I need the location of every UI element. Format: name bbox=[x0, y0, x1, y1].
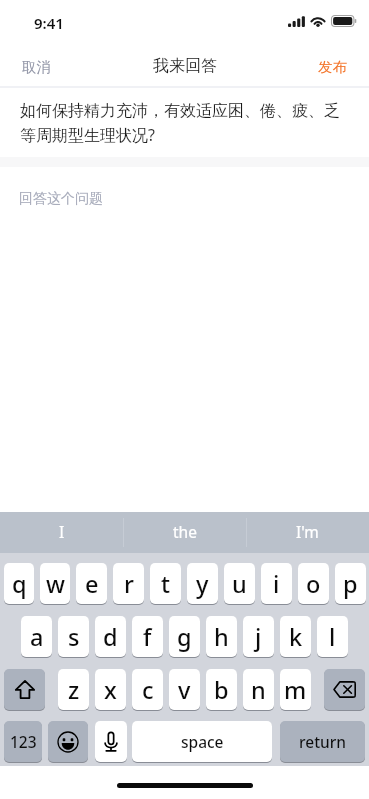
button[interactable]: e bbox=[76, 563, 107, 604]
staticText: m bbox=[284, 674, 307, 706]
button[interactable]: I'm bbox=[246, 512, 369, 553]
staticText: e bbox=[85, 568, 99, 600]
button[interactable]: 取消 bbox=[6, 46, 67, 88]
button[interactable]: Emoji bbox=[48, 721, 88, 762]
button[interactable]: b bbox=[206, 669, 237, 710]
staticText: the bbox=[173, 521, 197, 542]
button[interactable]: y bbox=[187, 563, 218, 604]
staticText: g bbox=[177, 621, 192, 653]
button[interactable]: m bbox=[280, 669, 311, 710]
staticText: i bbox=[273, 568, 280, 600]
button[interactable]: return bbox=[280, 721, 365, 762]
staticText: I'm bbox=[296, 521, 319, 542]
staticText: 我来回答 bbox=[153, 56, 217, 76]
button[interactable]: d bbox=[95, 616, 126, 657]
button[interactable]: 123 bbox=[4, 721, 42, 762]
staticText: return bbox=[299, 731, 347, 752]
staticText: q bbox=[12, 568, 27, 600]
button[interactable]: a bbox=[21, 616, 52, 657]
button[interactable]: g bbox=[169, 616, 200, 657]
staticText: p bbox=[343, 568, 358, 600]
staticText: w bbox=[46, 568, 65, 600]
button[interactable]: I bbox=[0, 512, 123, 553]
button[interactable]: x bbox=[95, 669, 126, 710]
button[interactable]: r bbox=[113, 563, 144, 604]
button[interactable]: h bbox=[206, 616, 237, 657]
staticText: 等周期型生理状况? bbox=[20, 124, 155, 146]
staticText: z bbox=[68, 674, 80, 706]
staticText: 回答这个问题 bbox=[19, 190, 103, 208]
button[interactable]: n bbox=[243, 669, 274, 710]
button[interactable]: q bbox=[4, 563, 34, 604]
staticText: c bbox=[142, 674, 154, 706]
button[interactable]: w bbox=[40, 563, 70, 604]
staticText: b bbox=[214, 674, 229, 706]
staticText: I bbox=[59, 521, 65, 542]
button[interactable]: l bbox=[317, 616, 348, 657]
staticText: 如何保持精力充沛，有效适应困、倦、疲、乏 bbox=[20, 101, 340, 121]
staticText: n bbox=[251, 674, 266, 706]
button[interactable]: o bbox=[298, 563, 329, 604]
button[interactable]: k bbox=[280, 616, 311, 657]
button[interactable]: i bbox=[261, 563, 292, 604]
staticText: v bbox=[178, 674, 191, 706]
staticText: x bbox=[104, 674, 117, 706]
button[interactable]: f bbox=[132, 616, 163, 657]
button[interactable]: the bbox=[123, 512, 246, 553]
staticText: l bbox=[329, 621, 336, 653]
button[interactable]: j bbox=[243, 616, 274, 657]
button[interactable]: 发布 bbox=[302, 46, 363, 88]
staticText: 123 bbox=[10, 731, 37, 752]
staticText: r bbox=[124, 568, 134, 600]
button[interactable]: space bbox=[132, 721, 272, 762]
staticText: t bbox=[161, 568, 171, 600]
staticText: 发布 bbox=[318, 58, 347, 76]
staticText: 取消 bbox=[22, 58, 51, 76]
staticText: k bbox=[289, 621, 303, 653]
staticText: d bbox=[103, 621, 118, 653]
staticText: u bbox=[232, 568, 247, 600]
staticText: s bbox=[68, 621, 80, 653]
button[interactable]: p bbox=[335, 563, 366, 604]
button[interactable]: Dictation bbox=[95, 721, 127, 762]
staticText: y bbox=[196, 568, 209, 600]
button[interactable]: t bbox=[150, 563, 181, 604]
staticText: a bbox=[30, 621, 44, 653]
staticText: space bbox=[181, 731, 224, 752]
staticText: o bbox=[306, 568, 321, 600]
staticText: h bbox=[214, 621, 229, 653]
button[interactable]: c bbox=[132, 669, 163, 710]
staticText: 9:41 bbox=[34, 13, 64, 33]
button[interactable]: z bbox=[58, 669, 89, 710]
button[interactable]: Shift bbox=[4, 669, 45, 710]
staticText: f bbox=[143, 621, 152, 653]
staticText: j bbox=[255, 621, 262, 653]
button[interactable]: u bbox=[224, 563, 255, 604]
button[interactable]: Delete bbox=[324, 669, 365, 710]
button[interactable]: s bbox=[58, 616, 89, 657]
button[interactable]: v bbox=[169, 669, 200, 710]
